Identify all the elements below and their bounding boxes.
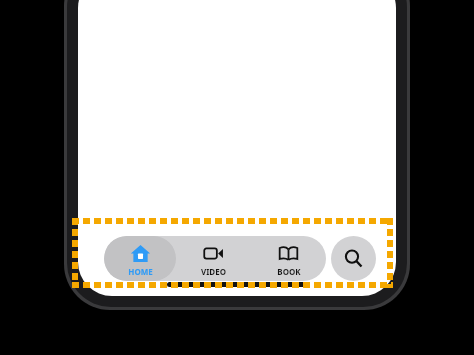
button[interactable]: HOME	[104, 236, 176, 281]
staticText: HOME	[128, 266, 153, 277]
staticText: BOOK	[277, 266, 301, 277]
staticText: VIDEO	[201, 266, 226, 277]
button[interactable]: BOOK	[251, 236, 326, 281]
button[interactable]: Search	[331, 236, 376, 281]
button[interactable]: VIDEO	[176, 236, 251, 281]
